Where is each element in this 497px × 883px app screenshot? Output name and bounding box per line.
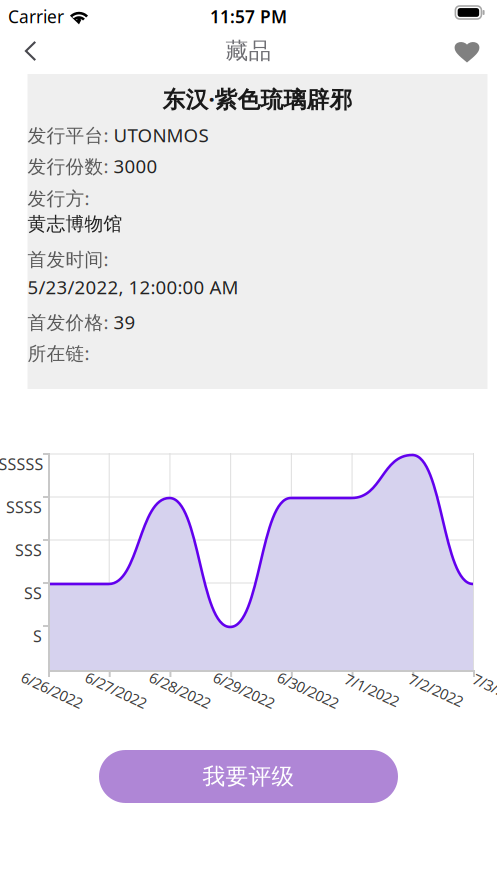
staticText: 3000 xyxy=(113,154,157,178)
staticText: 首发时间: xyxy=(27,247,108,271)
staticText: 东汉·紫色琉璃辟邪 xyxy=(162,84,352,114)
staticText: SSSS xyxy=(6,496,42,518)
staticText: 6/28/2022 xyxy=(147,680,213,700)
staticText: S xyxy=(33,625,42,647)
button[interactable]: 我要评级 xyxy=(99,750,398,803)
button[interactable]: Back xyxy=(8,29,52,73)
staticText: 6/26/2022 xyxy=(19,680,85,700)
staticText: SSSSS xyxy=(0,453,43,475)
staticText: SSS xyxy=(15,539,42,561)
staticText: 7/1/2022 xyxy=(343,680,401,700)
staticText: 藏品 xyxy=(225,37,271,65)
staticText: 6/30/2022 xyxy=(275,680,341,700)
staticText: 5/23/2022, 12:00:00 AM xyxy=(27,275,238,299)
staticText: 我要评级 xyxy=(202,763,294,790)
staticText: 发行平台: xyxy=(27,123,113,147)
staticText: 39 xyxy=(113,310,135,334)
staticText: Carrier xyxy=(8,5,64,28)
staticText: 6/27/2022 xyxy=(83,680,149,700)
staticText: 所在链: xyxy=(27,341,94,365)
staticText: 首发价格: xyxy=(27,310,113,334)
staticText: 发行份数: xyxy=(27,154,113,178)
staticText: 发行方: xyxy=(27,186,89,210)
staticText: 7/3/2022 xyxy=(471,680,497,700)
staticText: UTONMOS xyxy=(113,123,208,147)
button[interactable]: Favorite xyxy=(445,29,489,73)
staticText: 11:57 PM xyxy=(210,5,287,28)
staticText: 7/2/2022 xyxy=(407,680,465,700)
staticText: 6/29/2022 xyxy=(211,680,277,700)
staticText: 黄志博物馆 xyxy=(27,212,122,235)
staticText: SS xyxy=(24,582,42,604)
